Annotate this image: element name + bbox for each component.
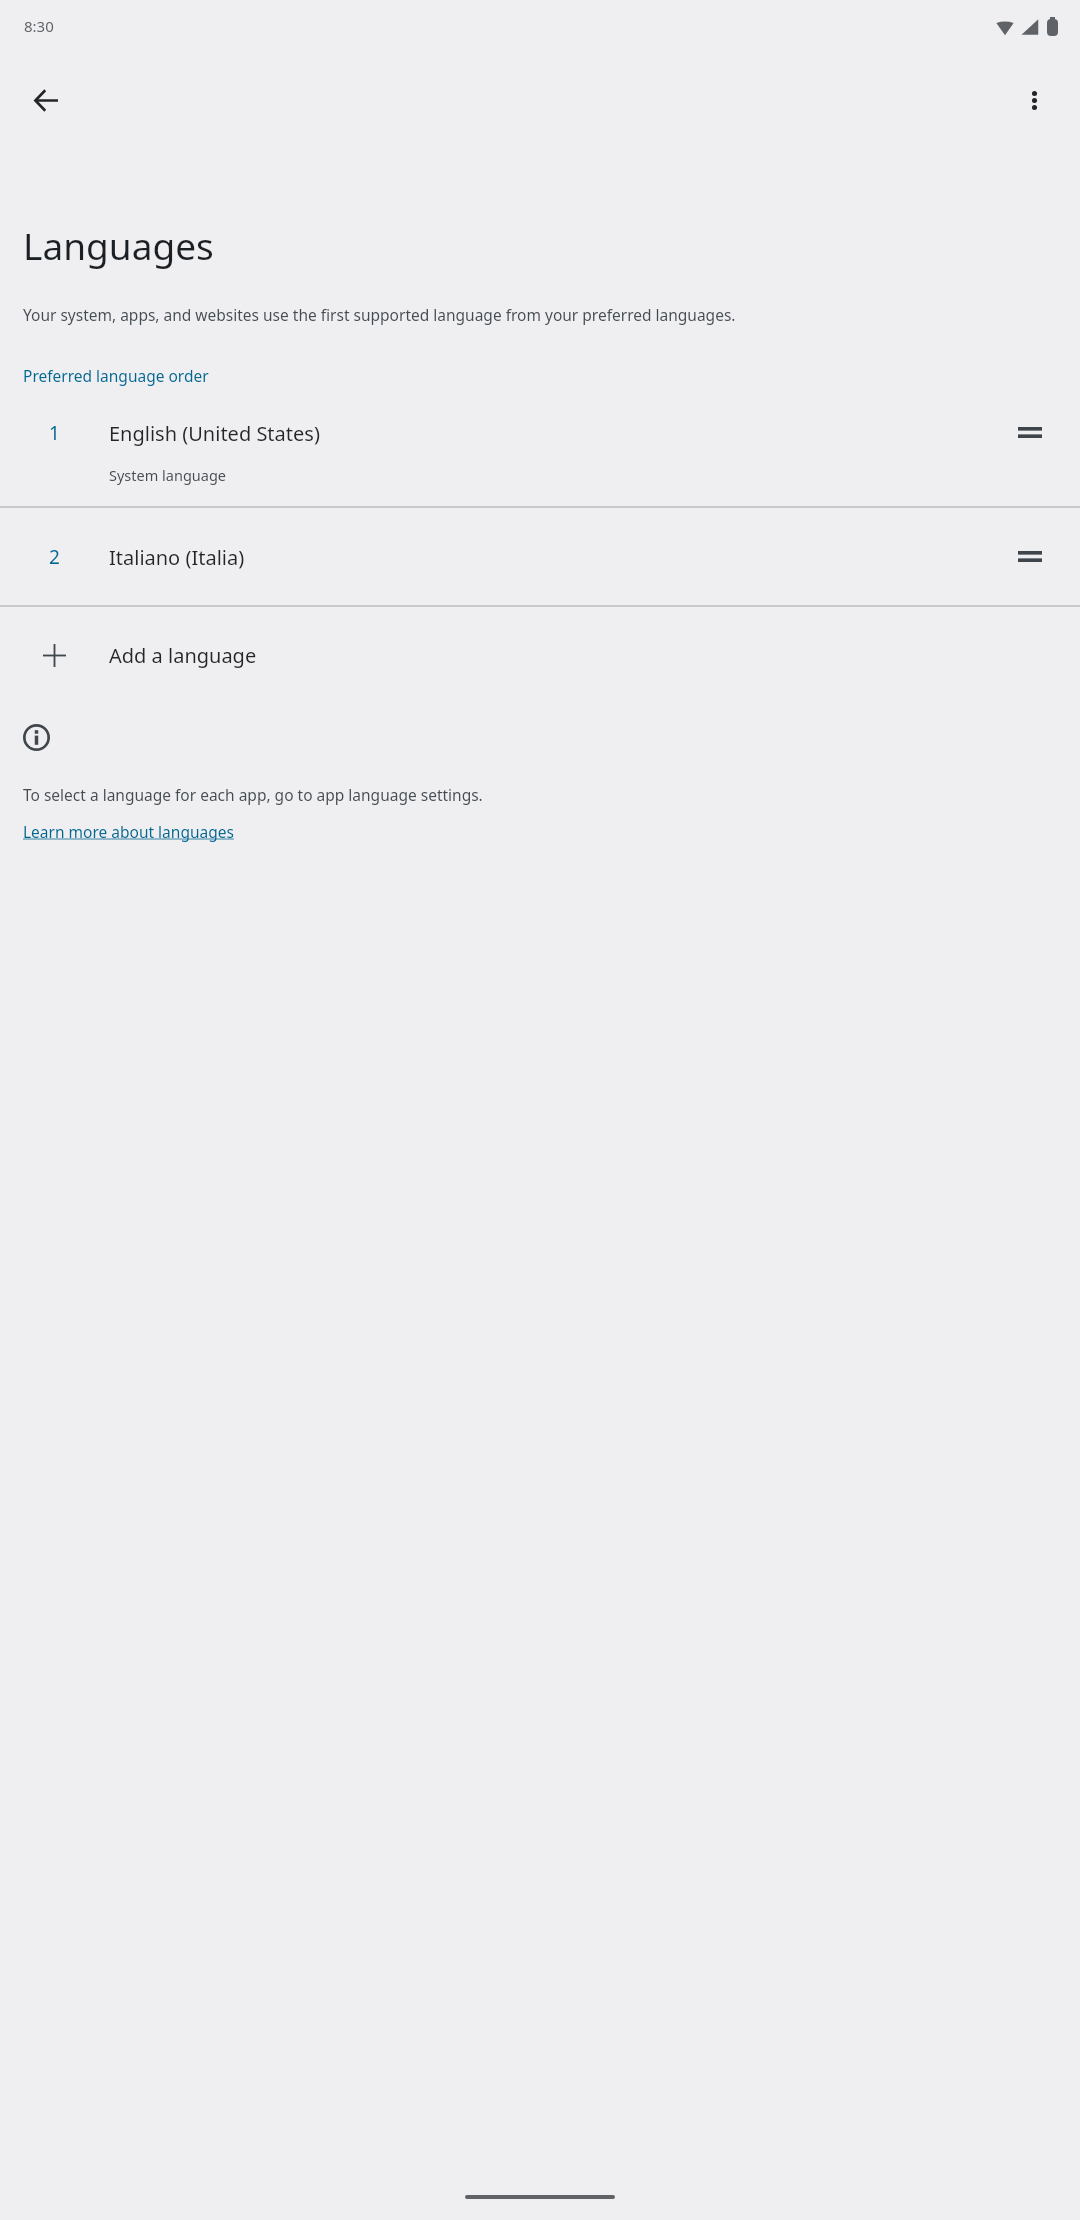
button[interactable]: 1 <box>0 406 1080 506</box>
staticText: 8:30 <box>24 16 54 36</box>
staticText: Preferred language order <box>23 365 209 386</box>
staticText: Your system, apps, and websites use the … <box>23 304 736 325</box>
staticText: Languages <box>23 220 214 270</box>
staticText: 2 <box>49 544 60 570</box>
staticText: 1 <box>49 420 60 446</box>
staticText: Italiano (Italia) <box>109 544 245 571</box>
staticText: Add a language <box>109 642 257 669</box>
staticText: Learn more about languages <box>23 821 234 842</box>
button[interactable]: Back <box>17 71 75 129</box>
staticText: To select a language for each app, go to… <box>23 784 483 805</box>
button[interactable]: Learn more about languages <box>23 821 234 842</box>
button[interactable]: Add a language <box>0 607 1080 704</box>
staticText: System language <box>109 465 226 485</box>
button[interactable]: More options <box>1005 71 1063 129</box>
button[interactable]: 2 <box>0 508 1080 605</box>
staticText: English (United States) <box>109 420 320 447</box>
